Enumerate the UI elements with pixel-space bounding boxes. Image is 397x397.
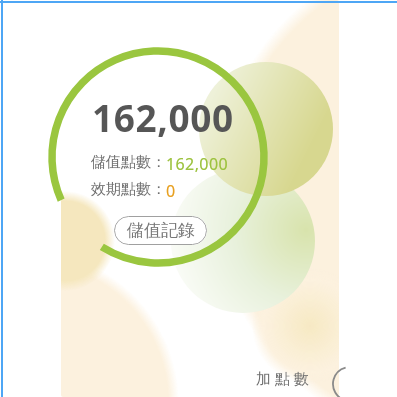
staticText: 162,000 bbox=[166, 153, 229, 175]
staticText: 儲值記錄 bbox=[127, 220, 195, 241]
staticText: 效期點數： bbox=[91, 180, 166, 199]
staticText: 儲值點數： bbox=[91, 153, 166, 172]
button[interactable]: 儲值記錄 bbox=[114, 216, 207, 245]
staticText: 0 bbox=[166, 180, 176, 202]
staticText: 加 點 數 bbox=[256, 368, 309, 388]
staticText: 162,000 bbox=[92, 92, 234, 142]
other: Add points bbox=[0, 0, 397, 397]
button[interactable]: 加 點 數 bbox=[256, 368, 309, 388]
